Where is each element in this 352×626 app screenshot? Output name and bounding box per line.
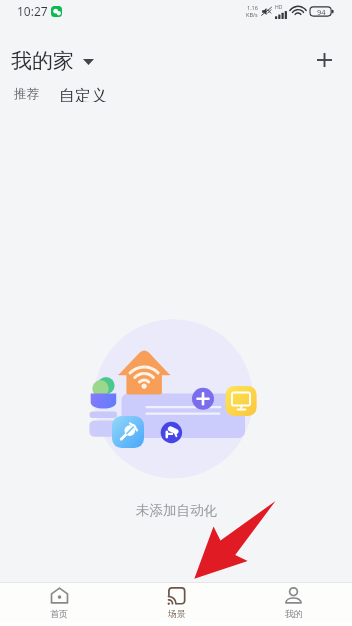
staticText: HD — [275, 4, 283, 11]
staticText: 未添加自动化 — [136, 502, 217, 519]
button[interactable]: Add — [307, 43, 341, 77]
button[interactable]: 我的 — [235, 583, 352, 622]
staticText: 10:27 — [17, 3, 48, 19]
staticText: 推荐 — [14, 86, 39, 102]
staticText: 我的 — [285, 608, 303, 619]
button[interactable]: 推荐 — [12, 83, 41, 105]
button[interactable]: 首页 — [0, 583, 118, 622]
staticText: 场景 — [168, 608, 186, 619]
staticText: 我的家 — [11, 48, 74, 74]
button[interactable]: 自定义 — [57, 83, 109, 105]
button[interactable]: 我的家 — [11, 44, 94, 78]
staticText: 自定义 — [59, 86, 107, 102]
staticText: 首页 — [50, 608, 68, 619]
button[interactable]: 场景 — [118, 583, 235, 622]
staticText: 94 — [317, 7, 326, 17]
staticText: 1.16 — [247, 4, 258, 11]
staticText: KB/s — [246, 11, 258, 18]
